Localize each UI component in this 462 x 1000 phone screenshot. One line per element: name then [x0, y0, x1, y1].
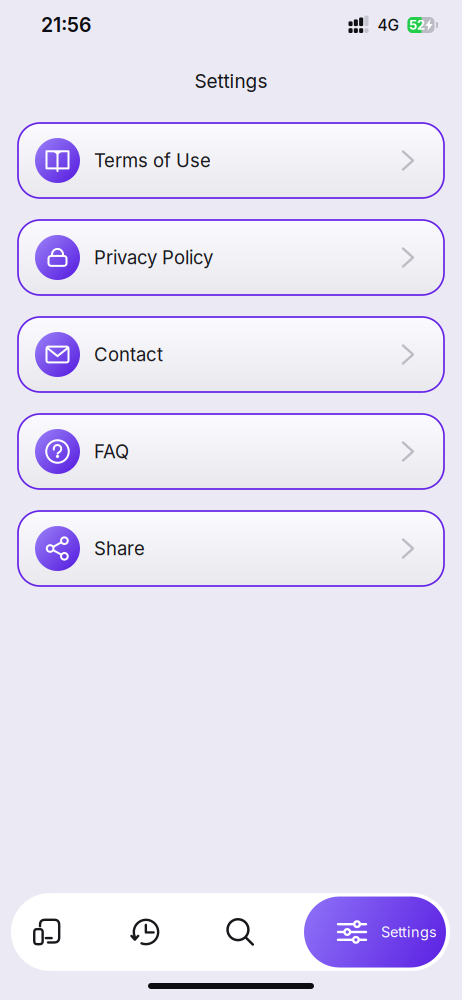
button[interactable]: Settings [304, 896, 446, 967]
staticText: 4G [377, 16, 399, 34]
staticText: 52 [409, 17, 425, 33]
button[interactable]: FAQ [18, 414, 444, 489]
staticText: Settings [194, 69, 267, 92]
staticText: Privacy Policy [94, 246, 213, 269]
button[interactable]: Privacy Policy [18, 220, 444, 295]
staticText: Contact [94, 343, 163, 366]
button[interactable]: History [83, 893, 209, 971]
staticText: Terms of Use [94, 149, 211, 172]
button[interactable]: Contact [18, 317, 444, 392]
button[interactable]: Terms of Use [18, 123, 444, 198]
staticText: Share [94, 537, 145, 560]
button[interactable]: Search [209, 893, 271, 971]
staticText: FAQ [94, 440, 129, 463]
button[interactable]: Devices [11, 893, 83, 971]
button[interactable]: Share [18, 511, 444, 586]
staticText: 21:56 [41, 13, 91, 37]
staticText: Settings [381, 923, 437, 941]
